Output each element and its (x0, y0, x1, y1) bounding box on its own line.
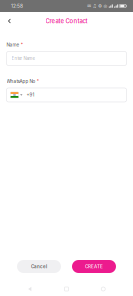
staticText: Cancel (31, 264, 47, 269)
staticText: 12:58 (11, 3, 23, 9)
staticText: Create Contact (45, 17, 87, 25)
staticText: Name (6, 42, 19, 47)
staticText: ◎ (103, 3, 107, 8)
button[interactable]: Back (23, 284, 37, 294)
staticText: ✉ (87, 3, 91, 9)
staticText: +91 (26, 92, 34, 98)
button[interactable]: CREATE (72, 260, 116, 273)
button[interactable]: Select country code (10, 92, 22, 98)
button[interactable]: Cancel (17, 260, 61, 273)
staticText: * (37, 78, 39, 84)
staticText: ♫ (93, 3, 97, 9)
button[interactable]: Recents (96, 284, 110, 294)
button[interactable]: Home (59, 284, 73, 294)
staticText: ⚙ (98, 3, 102, 9)
staticText: Enter Name (11, 56, 34, 61)
staticText: CREATE (85, 264, 103, 269)
staticText: WhatsApp No (6, 78, 35, 84)
button[interactable]: Back (4, 14, 15, 28)
staticText: * (21, 42, 23, 47)
